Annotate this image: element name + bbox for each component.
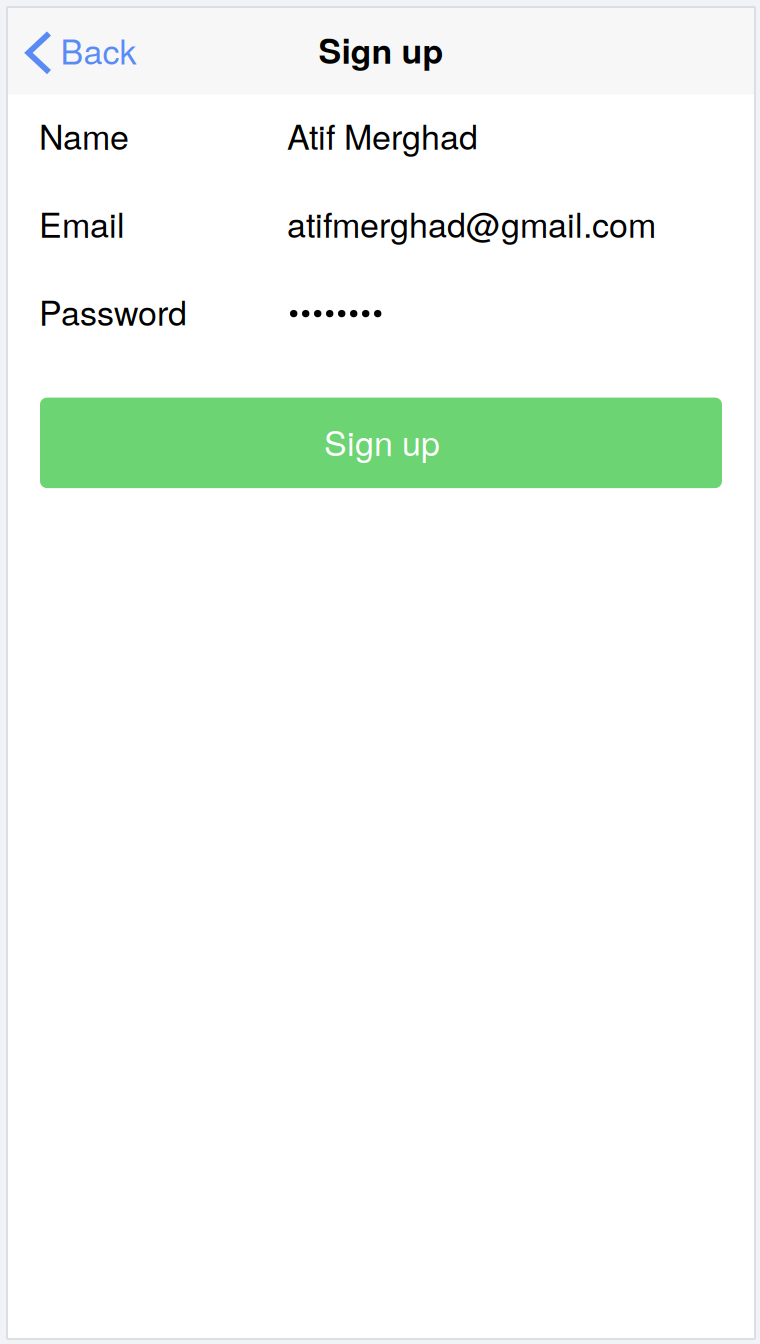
staticText: Password [39, 287, 187, 335]
staticText: Sign up [318, 25, 443, 74]
button[interactable]: Email [7, 183, 755, 271]
button[interactable]: Password [7, 271, 755, 359]
staticText: Name [39, 111, 129, 159]
staticText: Atif Merghad [287, 111, 478, 159]
button[interactable]: Back [7, 7, 150, 95]
staticText: Back [60, 25, 136, 74]
button[interactable]: Name [7, 95, 755, 183]
staticText: Sign up [324, 417, 440, 466]
staticText: Email [39, 199, 125, 247]
staticText: atifmerghad@gmail.com [287, 199, 656, 247]
button[interactable]: Sign up [40, 398, 722, 488]
